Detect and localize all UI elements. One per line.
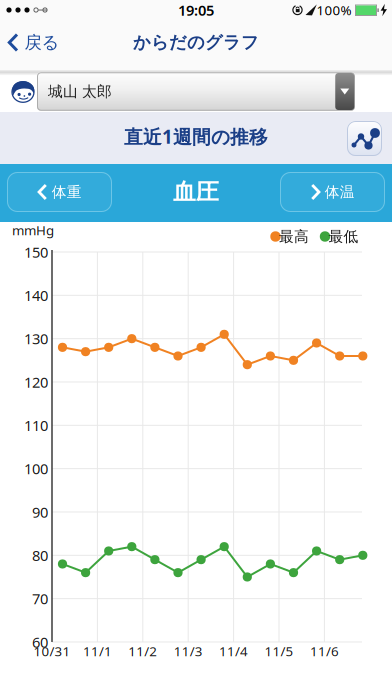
staticText: 11/2 — [128, 642, 157, 660]
button[interactable]: 体温 — [280, 172, 385, 212]
staticText: 80 — [32, 546, 48, 565]
button[interactable]: 体重 — [7, 172, 112, 212]
button[interactable]: 戻る — [0, 20, 63, 64]
staticText: 60 — [32, 632, 48, 652]
staticText: 70 — [32, 589, 48, 608]
staticText: 130 — [24, 329, 48, 348]
staticText: mmHg — [12, 221, 54, 239]
staticText: 城山 太郎 — [48, 82, 112, 100]
staticText: からだのグラフ — [133, 32, 259, 53]
staticText: 11/1 — [83, 642, 112, 660]
staticText: 19:05 — [178, 0, 214, 20]
staticText: 11/6 — [310, 642, 339, 660]
staticText: 11/3 — [174, 642, 203, 660]
staticText: 体温 — [325, 183, 355, 201]
staticText: 140 — [24, 286, 48, 305]
staticText: 150 — [24, 242, 48, 262]
button[interactable]: グラフ表示切替 — [347, 121, 382, 156]
staticText: 直近1週間の推移 — [124, 124, 268, 149]
staticText: 最高 — [279, 227, 309, 245]
button[interactable]: 利用者を選択 — [37, 72, 355, 111]
staticText: 110 — [24, 416, 48, 435]
staticText: 10/31 — [33, 642, 70, 660]
staticText: 11/4 — [219, 642, 248, 660]
staticText: 戻る — [24, 32, 59, 53]
staticText: 100 — [24, 459, 48, 478]
staticText: 最低 — [328, 227, 358, 245]
staticText: 100% — [316, 1, 351, 19]
staticText: 血圧 — [173, 178, 219, 206]
staticText: 11/5 — [264, 642, 293, 660]
staticText: 体重 — [52, 183, 82, 201]
staticText: 90 — [32, 502, 48, 522]
staticText: 120 — [24, 372, 48, 392]
